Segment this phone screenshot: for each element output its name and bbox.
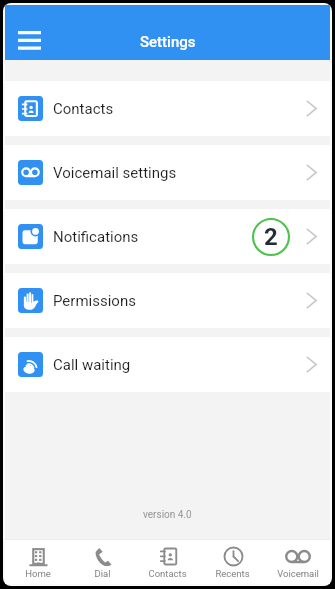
staticText: version 4.0 <box>143 509 192 521</box>
button[interactable]: Home <box>5 540 70 584</box>
staticText: Dial <box>94 568 111 579</box>
staticText: Contacts <box>53 100 114 118</box>
button[interactable]: Dial <box>70 540 135 584</box>
staticText: Call waiting <box>53 356 131 374</box>
button[interactable]: Call waiting <box>5 337 330 392</box>
staticText: Voicemail settings <box>53 164 177 182</box>
button[interactable]: Permissions <box>5 273 330 328</box>
staticText: 2 <box>264 223 278 251</box>
staticText: Notifications <box>53 228 139 246</box>
button[interactable]: Notifications <box>5 209 330 264</box>
staticText: Voicemail <box>277 568 319 579</box>
staticText: Contacts <box>148 568 187 579</box>
button[interactable]: Contacts <box>135 540 200 584</box>
button[interactable]: Contacts <box>5 81 330 136</box>
staticText: Home <box>25 568 51 579</box>
staticText: Settings <box>140 33 196 51</box>
staticText: Recents <box>215 568 250 579</box>
button[interactable]: Menu <box>11 22 47 58</box>
staticText: Permissions <box>53 292 136 310</box>
button[interactable]: Voicemail settings <box>5 145 330 200</box>
button[interactable]: Recents <box>200 540 265 584</box>
button[interactable]: Voicemail <box>265 540 330 584</box>
